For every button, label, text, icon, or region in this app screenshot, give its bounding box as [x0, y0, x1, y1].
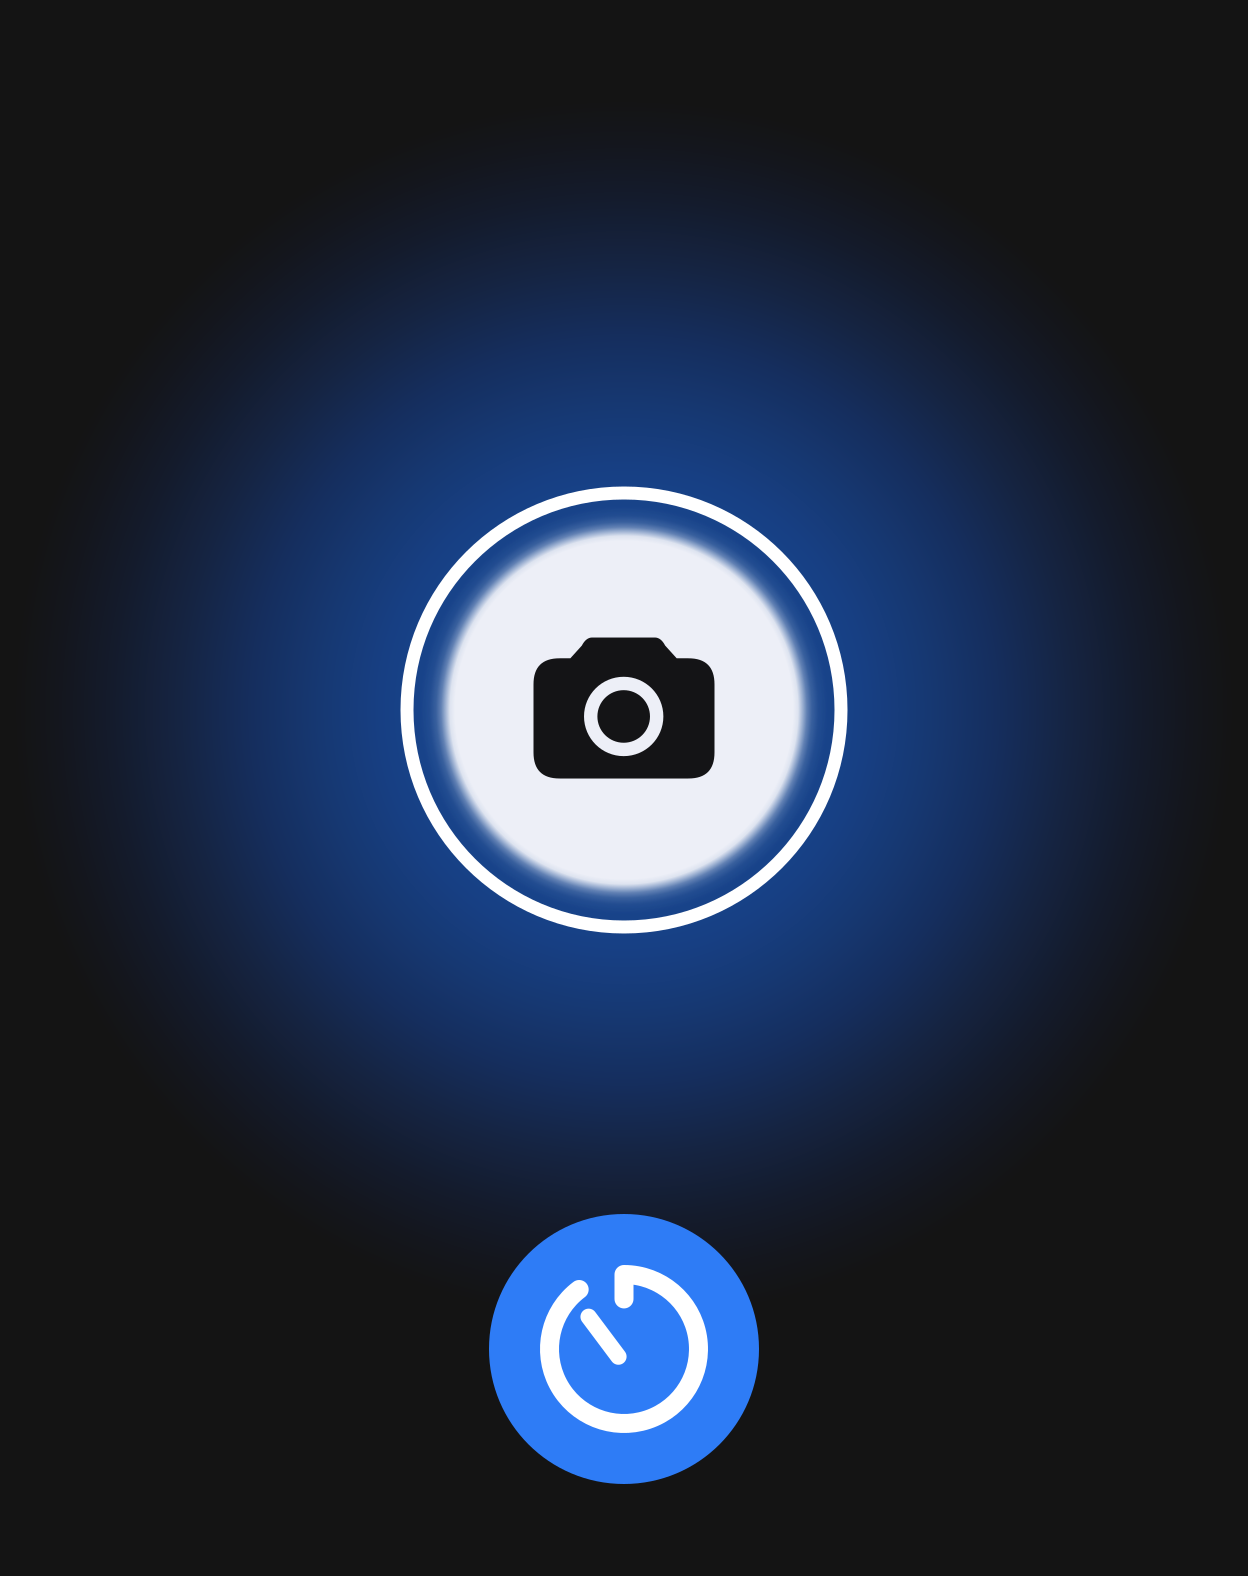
- button[interactable]: Timer: [489, 1214, 759, 1484]
- button[interactable]: Take photo: [400, 486, 847, 933]
